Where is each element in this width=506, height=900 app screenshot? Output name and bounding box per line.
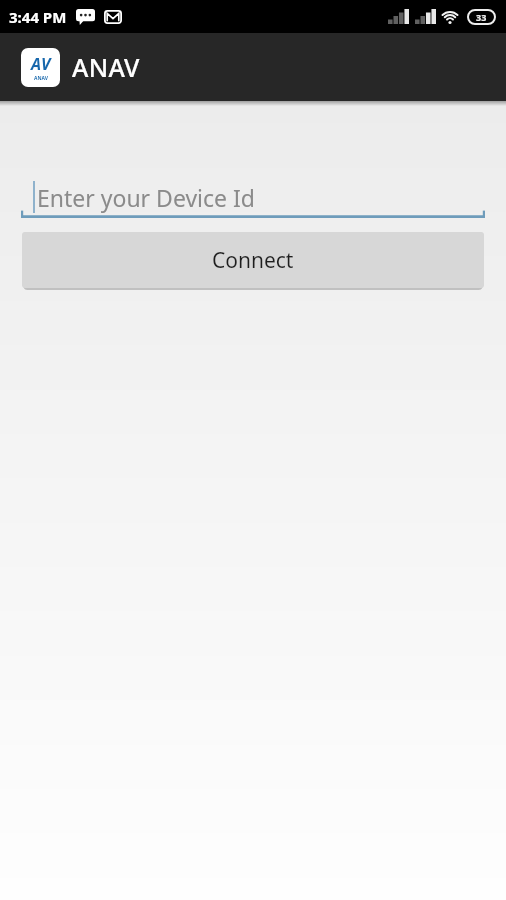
staticText: Enter your Device Id: [37, 182, 255, 213]
staticText: 33: [476, 11, 487, 23]
staticText: ANAV: [34, 75, 49, 82]
staticText: AV: [31, 53, 51, 75]
button[interactable]: Connect: [22, 232, 484, 288]
button[interactable]: Enter your Device Id: [21, 176, 485, 218]
staticText: ANAV: [72, 50, 140, 84]
staticText: 3:44 PM: [9, 7, 67, 27]
staticText: Connect: [212, 246, 294, 275]
